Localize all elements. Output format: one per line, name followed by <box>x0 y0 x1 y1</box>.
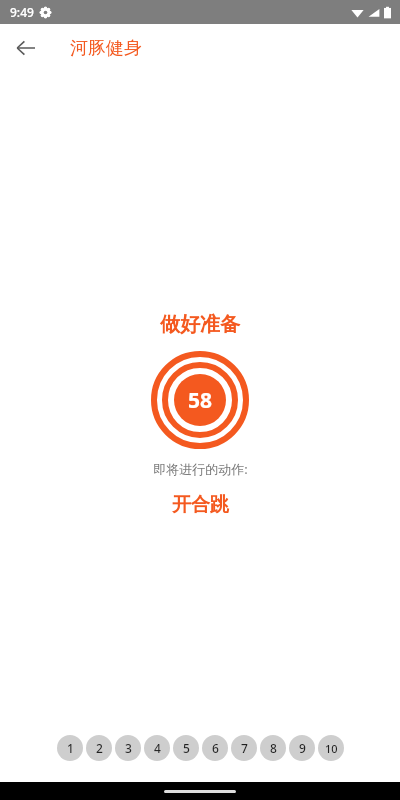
button[interactable]: 6 <box>202 735 228 761</box>
staticText: 4 <box>154 740 161 756</box>
staticText: 9 <box>299 740 306 756</box>
button[interactable]: 3 <box>115 735 141 761</box>
staticText: 6 <box>212 740 219 756</box>
staticText: 10 <box>325 741 338 756</box>
staticText: 2 <box>96 740 103 756</box>
button[interactable]: 5 <box>173 735 199 761</box>
staticText: 开合跳 <box>172 493 229 517</box>
button[interactable]: 10 <box>318 735 344 761</box>
staticText: 58 <box>188 386 213 415</box>
staticText: 1 <box>67 740 74 756</box>
button[interactable]: 1 <box>57 735 83 761</box>
button[interactable]: 7 <box>231 735 257 761</box>
staticText: 7 <box>241 740 248 756</box>
staticText: 即将进行的动作: <box>153 460 248 478</box>
button[interactable]: 8 <box>260 735 286 761</box>
staticText: 3 <box>125 740 132 756</box>
staticText: 5 <box>183 740 190 756</box>
staticText: 河豚健身 <box>70 37 142 60</box>
staticText: 9:49 <box>10 4 34 20</box>
button[interactable]: 9 <box>289 735 315 761</box>
staticText: 做好准备 <box>160 312 240 337</box>
button[interactable]: Back <box>6 28 46 68</box>
staticText: 8 <box>270 740 277 756</box>
button[interactable]: 2 <box>86 735 112 761</box>
button[interactable]: 4 <box>144 735 170 761</box>
